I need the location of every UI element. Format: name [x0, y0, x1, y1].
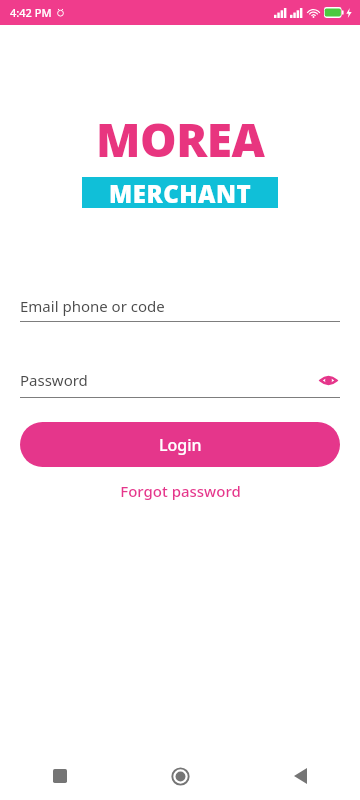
staticText: Forgot password — [120, 481, 241, 501]
staticText: Login — [159, 434, 202, 456]
button[interactable]: Home — [120, 752, 240, 800]
button[interactable]: Login — [20, 422, 340, 467]
button[interactable]: Email phone or code — [20, 296, 340, 322]
staticText: Password — [20, 370, 316, 390]
button[interactable]: Recent apps — [0, 752, 120, 800]
button[interactable]: Password — [20, 368, 340, 398]
button[interactable]: Back — [240, 752, 360, 800]
button[interactable]: Forgot password — [108, 477, 253, 505]
staticText: MOREA — [96, 108, 265, 171]
button[interactable]: Show password — [316, 368, 340, 392]
staticText: MERCHANT — [109, 177, 252, 208]
staticText: Email phone or code — [20, 296, 340, 316]
staticText: 4:42 PM — [10, 5, 52, 20]
